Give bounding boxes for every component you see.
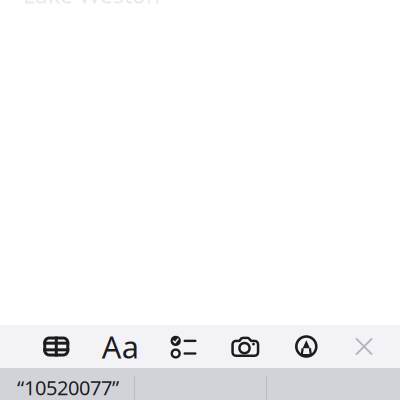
button[interactable]: Close bbox=[336, 325, 391, 368]
button[interactable]: Markup bbox=[276, 325, 336, 368]
button[interactable]: “10520077” bbox=[0, 368, 134, 400]
staticText: Lake Weston bbox=[23, 0, 160, 10]
button[interactable]: Camera bbox=[214, 325, 276, 368]
staticText: Aa bbox=[102, 326, 139, 367]
button[interactable]: Table bbox=[24, 325, 89, 368]
staticText: “10520077” bbox=[17, 374, 119, 400]
button[interactable]: Format bbox=[89, 325, 152, 368]
button[interactable]: Checklist bbox=[152, 325, 214, 368]
